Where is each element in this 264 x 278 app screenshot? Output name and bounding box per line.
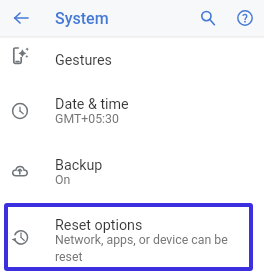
staticText: On	[55, 173, 71, 187]
button[interactable]: Gestures	[0, 52, 264, 92]
staticText: GMT+05:30	[55, 112, 119, 126]
button[interactable]: Reset options	[0, 217, 264, 278]
staticText: Gestures	[55, 52, 112, 69]
button[interactable]: Search	[194, 4, 222, 32]
staticText: System	[55, 9, 109, 28]
button[interactable]: Date & time	[0, 96, 264, 142]
staticText: Backup	[55, 157, 103, 174]
staticText: Date & time	[55, 96, 129, 113]
button[interactable]: Help	[231, 4, 259, 32]
button[interactable]: Backup	[0, 157, 264, 203]
staticText: Reset options	[55, 217, 143, 234]
staticText: Network, apps, or device can be reset	[55, 233, 245, 264]
button[interactable]: Back	[8, 5, 34, 31]
